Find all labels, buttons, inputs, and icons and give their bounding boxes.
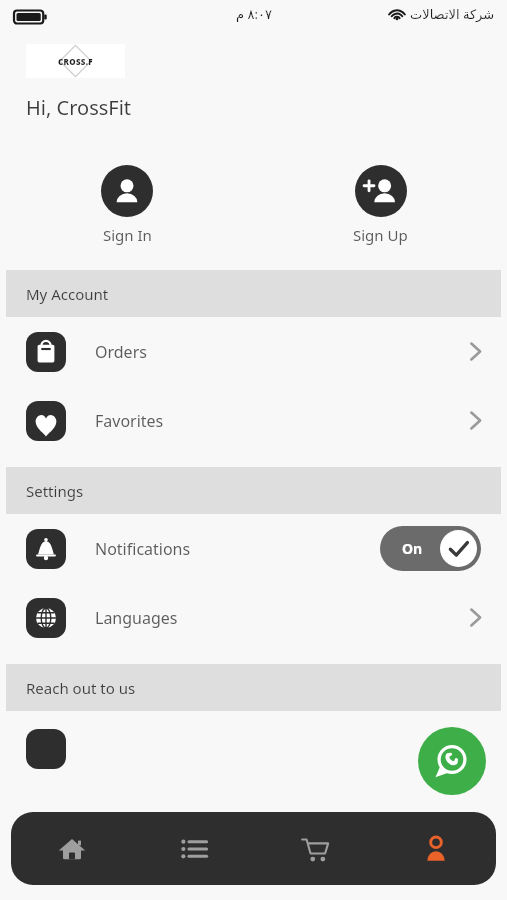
staticText: CROSS.F [58,56,93,67]
staticText: Settings [26,481,84,501]
button[interactable]: Orders [0,317,507,386]
staticText: On [402,539,423,558]
button[interactable]: Sign In [97,161,157,249]
button[interactable]: Cart [254,812,375,885]
staticText: شركة الاتصالات [410,5,495,23]
staticText: Reach out to us [26,678,136,698]
staticText: Sign In [103,225,152,245]
staticText: Favorites [95,410,164,432]
button[interactable]: Sign Up [349,161,412,249]
staticText: Languages [95,607,178,629]
button[interactable]: Home [11,812,133,885]
button[interactable]: Categories [133,812,254,885]
button[interactable]: Languages [0,583,507,652]
button[interactable]: Favorites [0,386,507,455]
button[interactable]: Notifications [0,514,507,583]
staticText: Hi, CrossFit [26,94,132,121]
staticText: My Account [26,284,109,304]
button[interactable]: On [380,526,481,571]
button[interactable]: Account [375,812,496,885]
staticText: Notifications [95,538,191,560]
staticText: ٨:٠٧ م [236,5,272,23]
staticText: Orders [95,341,147,363]
button[interactable]: WhatsApp [418,727,486,795]
staticText: Sign Up [353,225,408,245]
